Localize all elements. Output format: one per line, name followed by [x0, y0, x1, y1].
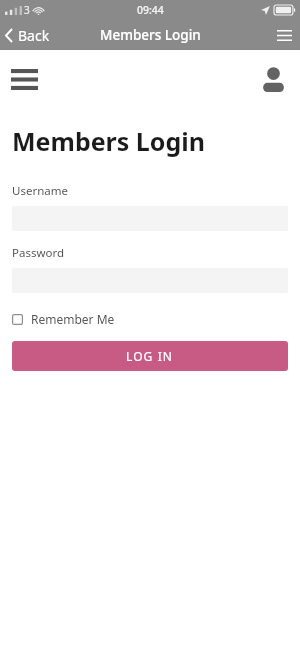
staticText: Back	[18, 26, 50, 45]
staticText: Members Login	[100, 26, 201, 44]
staticText: Remember Me	[31, 311, 115, 327]
staticText: Members Login	[12, 124, 205, 158]
staticText: 3	[24, 3, 30, 17]
staticText: 09:44	[137, 3, 164, 17]
staticText: Username	[12, 183, 68, 199]
button[interactable]: LOG IN	[12, 341, 288, 371]
button[interactable]: Remember Me	[12, 311, 115, 327]
button[interactable]: Menu	[269, 24, 300, 47]
button[interactable]: Back	[0, 22, 58, 49]
button[interactable]: Account	[251, 58, 300, 100]
staticText: Password	[12, 245, 65, 261]
staticText: LOG IN	[126, 348, 174, 364]
button[interactable]: Open navigation menu	[0, 61, 49, 98]
